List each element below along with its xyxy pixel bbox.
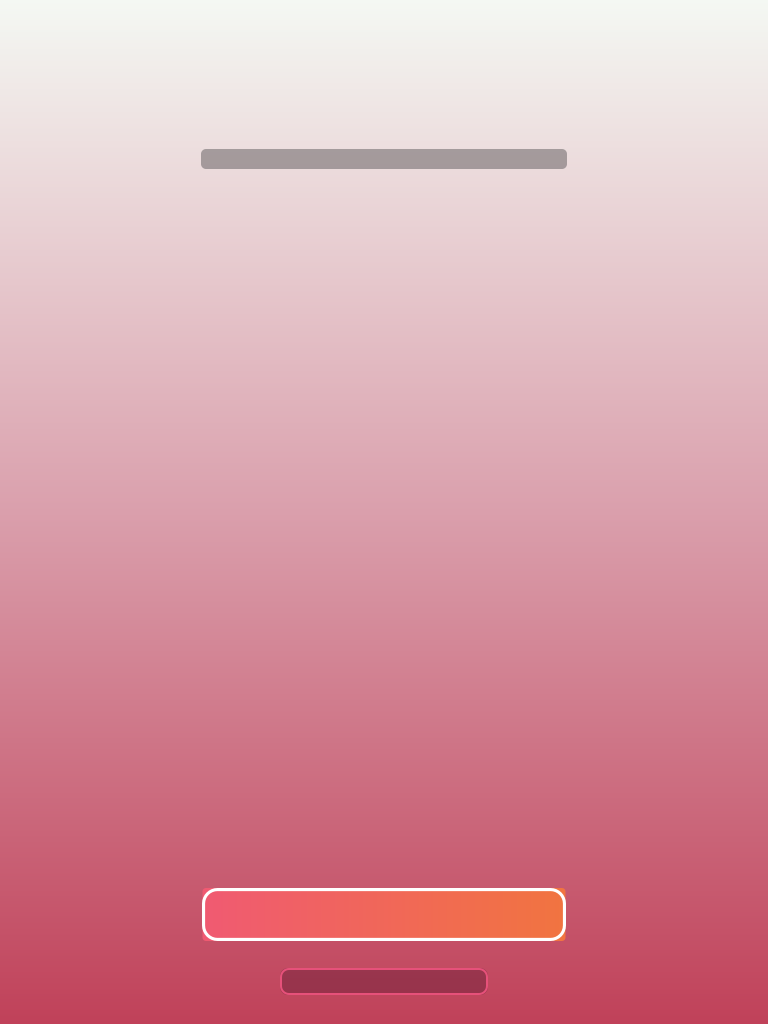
button[interactable]: Continue [202, 888, 566, 941]
button[interactable]: Skip [280, 968, 488, 995]
